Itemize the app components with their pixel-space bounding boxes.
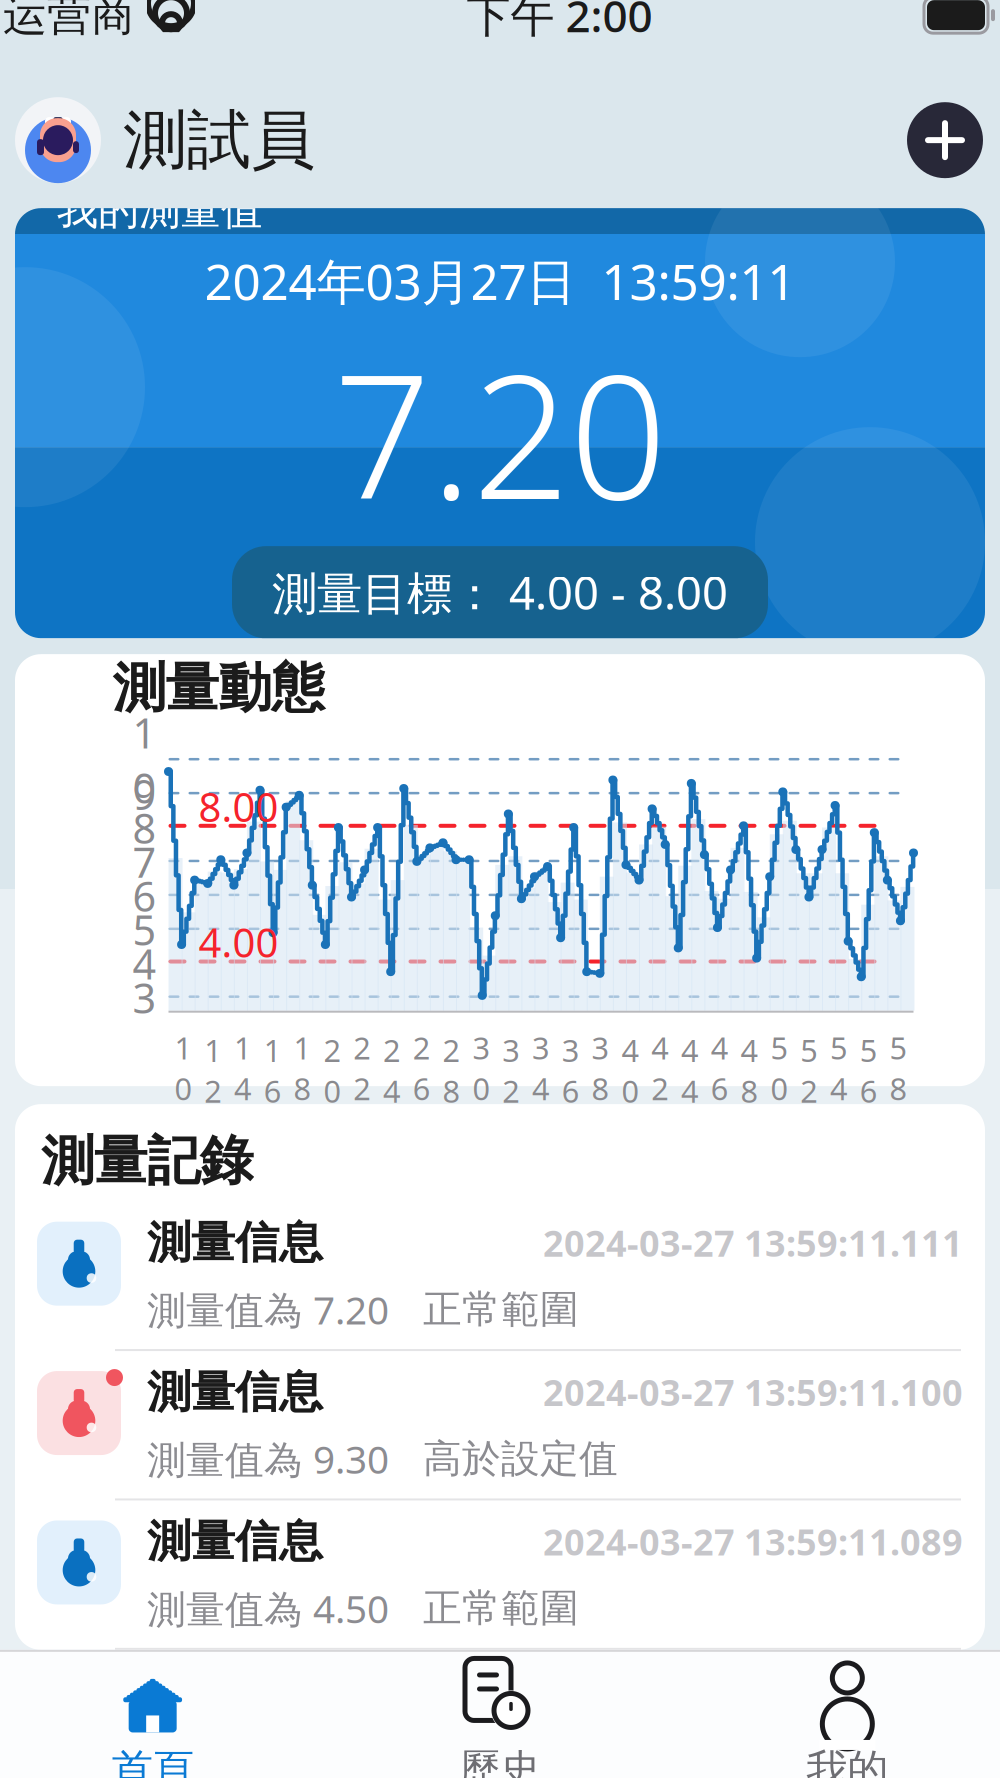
staticText: 34 <box>532 1027 550 1109</box>
staticText: 2024-03-27 13:59:11.089 <box>543 1518 963 1565</box>
staticText: 8 <box>132 800 156 855</box>
staticText: 54 <box>830 1027 848 1109</box>
button[interactable]: 測量信息 <box>15 1500 985 1650</box>
staticText: 48 <box>741 1030 759 1111</box>
staticText: 下午 2:00 <box>466 0 652 44</box>
staticText: 2024年03月27日 13:59:11 <box>204 248 795 313</box>
staticText: 5 <box>132 902 156 957</box>
staticText: 測量記錄 <box>41 1128 253 1194</box>
staticText: 42 <box>651 1027 669 1109</box>
button[interactable]: 新增測量 <box>907 102 983 178</box>
staticText: 測量信息 <box>147 1216 323 1270</box>
staticText: 6 <box>132 868 156 923</box>
staticText: 我的測量值 <box>57 185 262 235</box>
staticText: 4 <box>132 936 156 991</box>
button[interactable]: 測試員 <box>15 97 315 183</box>
staticText: 38 <box>592 1027 610 1109</box>
button[interactable]: 測量信息 <box>15 1351 985 1500</box>
staticText: 測量值為 4.50 <box>147 1582 389 1634</box>
staticText: 52 <box>800 1030 818 1111</box>
staticText: 高於設定值 <box>423 1435 618 1482</box>
staticText: 測量信息 <box>147 1365 323 1419</box>
staticText: 28 <box>443 1030 461 1111</box>
button[interactable]: 首頁 <box>0 1652 326 1778</box>
staticText: 2024-03-27 13:59:11.100 <box>543 1368 963 1416</box>
staticText: 58 <box>890 1027 908 1109</box>
staticText: 36 <box>562 1030 580 1111</box>
staticText: 运营商 <box>3 0 135 42</box>
staticText: 4.00 <box>198 915 278 969</box>
staticText: 50 <box>770 1027 788 1109</box>
staticText: 40 <box>621 1030 639 1111</box>
staticText: 46 <box>711 1027 729 1109</box>
staticText: 測量值為 7.20 <box>147 1284 389 1335</box>
button[interactable]: 歷史 <box>326 1652 674 1778</box>
staticText: 2024-03-27 13:59:11.111 <box>543 1219 963 1267</box>
staticText: 10 <box>132 705 156 815</box>
staticText: 7.20 <box>333 319 666 546</box>
staticText: 測量信息 <box>147 1514 323 1568</box>
staticText: 8.00 <box>198 780 278 833</box>
staticText: 24 <box>383 1030 401 1111</box>
staticText: 9 <box>132 766 156 821</box>
button[interactable]: 測量信息 <box>15 1202 985 1351</box>
staticText: 16 <box>264 1030 282 1111</box>
staticText: 44 <box>681 1030 699 1111</box>
staticText: 7 <box>132 834 156 889</box>
staticText: 正常範圍 <box>423 1584 579 1632</box>
staticText: 56 <box>860 1030 878 1111</box>
staticText: 14 <box>234 1027 252 1109</box>
staticText: 歷史 <box>459 1744 541 1778</box>
button[interactable]: 我的 <box>674 1652 1000 1778</box>
staticText: 22 <box>353 1027 371 1109</box>
staticText: 我的 <box>806 1744 888 1778</box>
staticText: 首頁 <box>112 1744 194 1778</box>
staticText: 測量值為 9.30 <box>147 1433 389 1484</box>
staticText: 測量動態 <box>112 655 324 721</box>
staticText: 3 <box>132 970 156 1025</box>
staticText: 12 <box>204 1030 222 1111</box>
staticText: 32 <box>502 1030 520 1111</box>
staticText: 30 <box>472 1027 490 1109</box>
staticText: 18 <box>294 1027 312 1109</box>
staticText: 26 <box>413 1027 431 1109</box>
staticText: 測量目標： 4.00 - 8.00 <box>272 562 728 622</box>
staticText: 測試員 <box>123 101 315 179</box>
staticText: 10 <box>174 1027 192 1109</box>
staticText: 正常範圍 <box>423 1286 579 1333</box>
staticText: 20 <box>323 1030 341 1111</box>
